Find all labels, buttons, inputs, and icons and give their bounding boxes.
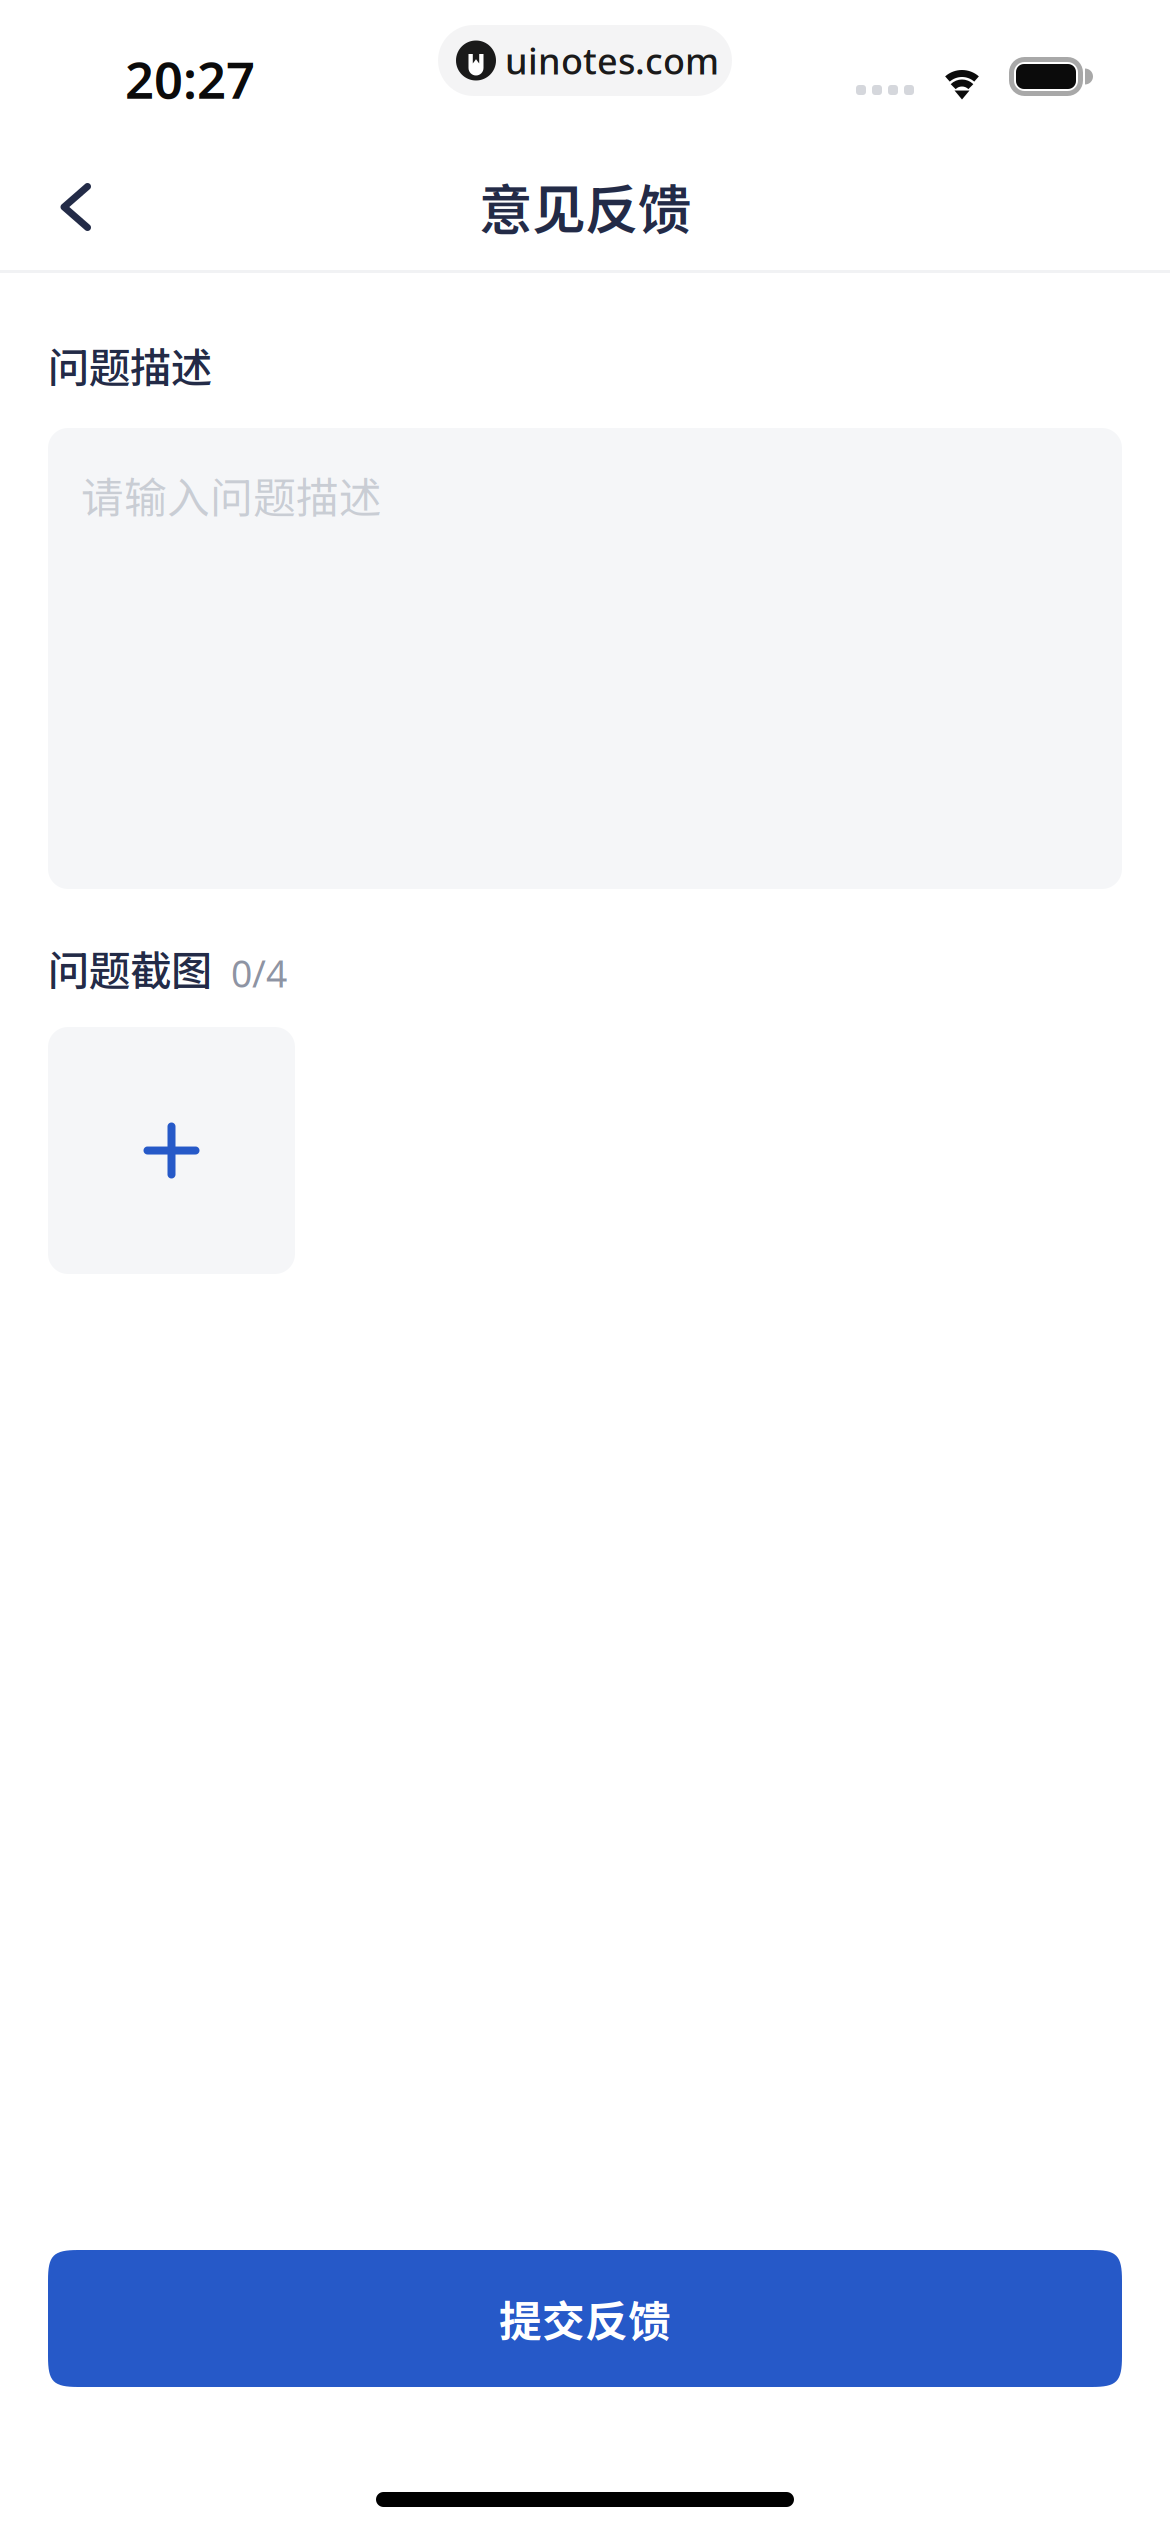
staticText: 请输入问题描述: [81, 464, 382, 526]
staticText: 提交反馈: [499, 2288, 671, 2349]
staticText: 问题描述: [48, 335, 212, 395]
button[interactable]: 提交反馈: [48, 2250, 1122, 2387]
button[interactable]: Add screenshot: [48, 1027, 295, 1274]
staticText: 意见反馈: [479, 167, 691, 245]
staticText: 问题截图: [48, 938, 212, 998]
staticText: 0/4: [231, 948, 287, 998]
button[interactable]: 请输入问题描述: [48, 428, 1122, 889]
staticText: 20:27: [125, 45, 255, 113]
staticText: uinotes.com: [505, 37, 719, 84]
button[interactable]: Back: [45, 172, 145, 242]
